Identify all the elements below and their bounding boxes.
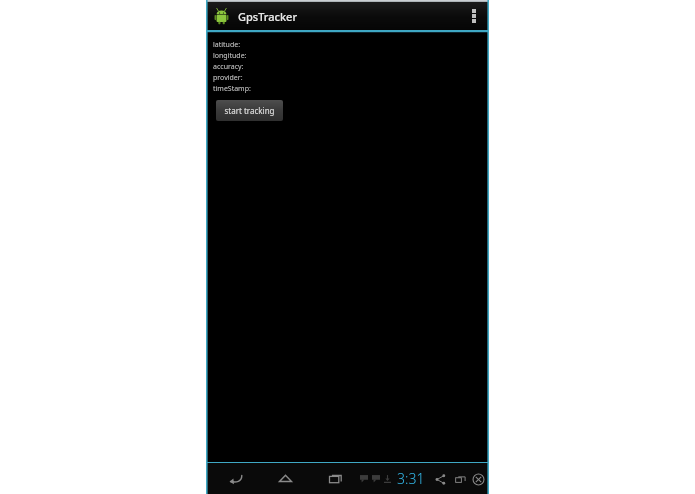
button[interactable]: start tracking bbox=[216, 100, 283, 121]
staticText: latitude: bbox=[213, 40, 241, 50]
button[interactable]: Recent apps bbox=[310, 463, 360, 494]
other: App icon bbox=[212, 7, 231, 26]
button[interactable]: Home bbox=[260, 463, 310, 494]
staticText: timeStamp: bbox=[213, 84, 251, 94]
staticText: 3:31 bbox=[397, 469, 425, 488]
staticText: longitude: bbox=[213, 51, 247, 61]
button[interactable]: Screenshot bbox=[452, 471, 468, 487]
staticText: accuracy: bbox=[213, 62, 244, 72]
staticText: GpsTracker bbox=[238, 9, 298, 24]
button[interactable]: Share bbox=[432, 471, 448, 487]
staticText: provider: bbox=[213, 73, 243, 83]
button[interactable]: Back bbox=[210, 463, 260, 494]
button[interactable]: More options bbox=[463, 2, 485, 30]
staticText: start tracking bbox=[224, 105, 275, 116]
button[interactable]: Close bbox=[472, 471, 485, 487]
